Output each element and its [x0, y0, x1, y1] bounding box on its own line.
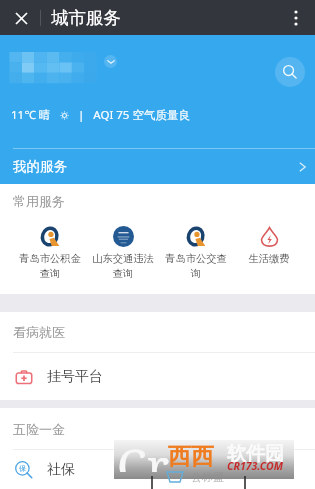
staticText: Cr	[117, 440, 170, 472]
button[interactable]: Close	[8, 5, 34, 31]
staticText: 五险一金	[13, 421, 65, 437]
button[interactable]: Search	[275, 57, 305, 87]
button[interactable]: 青岛市公交查 询	[159, 217, 233, 294]
button[interactable]: 我的服务	[0, 149, 315, 184]
staticText: 挂号平台	[47, 368, 103, 386]
staticText: CR173.COM	[227, 459, 283, 473]
staticText: 青岛市公交查 询	[165, 252, 227, 280]
staticText: 青岛市公积金 查询	[19, 252, 81, 280]
button[interactable]: 生活缴费	[232, 217, 306, 294]
button[interactable]: More options	[283, 5, 309, 31]
staticText: 社保	[47, 461, 75, 479]
staticText: 常用服务	[13, 193, 65, 209]
button[interactable]: 青岛市公积金 查询	[13, 217, 87, 294]
staticText: 公标盟	[191, 470, 224, 484]
button[interactable]: 保	[0, 450, 315, 489]
staticText: 我的服务	[13, 158, 67, 175]
staticText: 西西	[168, 442, 214, 471]
button[interactable]: 挂号平台	[0, 353, 315, 400]
button[interactable]: Change city	[104, 55, 117, 68]
staticText: | AQI 75 空气质量良	[69, 107, 190, 123]
staticText: 看病就医	[13, 324, 65, 340]
staticText: 11℃ 晴	[11, 107, 60, 123]
button[interactable]: 山东交通违法 查询	[86, 217, 160, 294]
staticText: 城市服务	[51, 7, 121, 29]
staticText: 山东交通违法 查询	[92, 252, 154, 280]
staticText: 生活缴费	[248, 252, 290, 265]
staticText: 保	[19, 464, 26, 473]
staticText: 软件园	[227, 442, 284, 466]
